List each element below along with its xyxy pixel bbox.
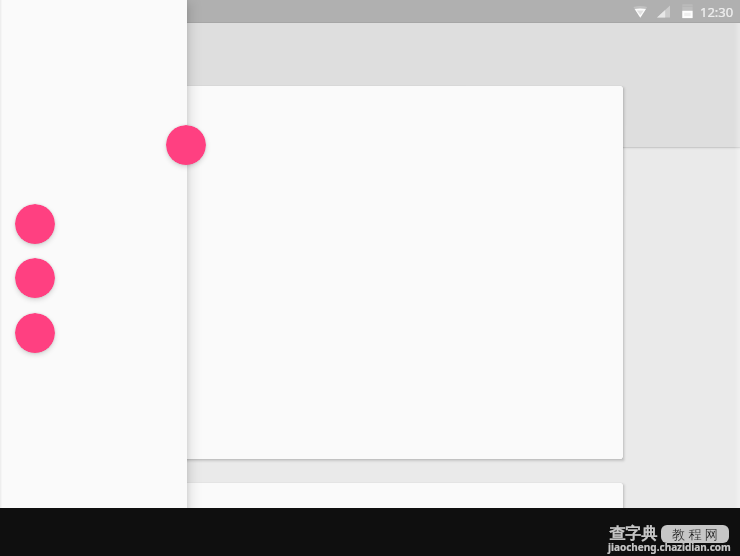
staticText: jiaocheng.chazidian.com (608, 540, 731, 554)
button[interactable]: Share (15, 313, 55, 353)
button[interactable]: App bar (0, 23, 740, 148)
button[interactable]: Create (15, 204, 55, 244)
staticText: 教 程 网 (672, 525, 718, 543)
button[interactable]: Edit (15, 258, 55, 298)
button[interactable]: Add (166, 125, 206, 165)
button[interactable]: Second card (140, 483, 623, 543)
staticText: 12:30 (700, 3, 734, 21)
button[interactable]: Content card (140, 86, 623, 459)
staticText: 查字典 (609, 524, 657, 544)
